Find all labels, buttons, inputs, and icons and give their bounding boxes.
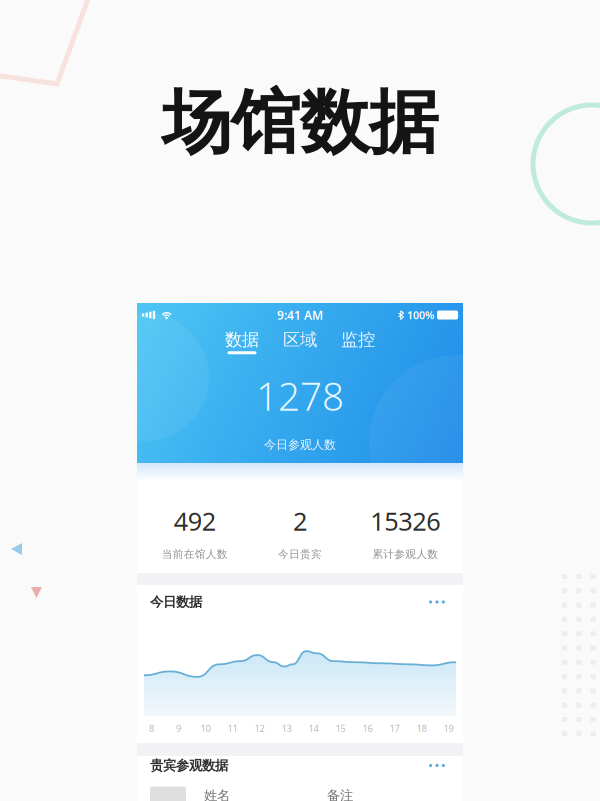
staticText: 贵宾参观数据: [150, 757, 228, 774]
staticText: 12: [254, 722, 264, 734]
staticText: 区域: [283, 329, 317, 350]
staticText: 累计参观人数: [372, 548, 438, 561]
staticText: 9: [176, 722, 181, 734]
staticText: 8: [149, 722, 154, 734]
staticText: 姓名: [204, 787, 230, 801]
staticText: 14: [308, 722, 318, 734]
staticText: 今日数据: [150, 594, 202, 610]
staticText: 9:41 AM: [277, 307, 323, 323]
staticText: 11: [227, 722, 237, 734]
staticText: 备注: [327, 787, 353, 801]
staticText: 492: [174, 504, 216, 538]
button[interactable]: More options: [424, 757, 450, 774]
staticText: 19: [443, 722, 453, 734]
button[interactable]: More options: [424, 593, 450, 611]
staticText: 今日参观人数: [264, 437, 336, 452]
staticText: 今日贵宾: [278, 548, 322, 561]
staticText: 13: [281, 722, 291, 734]
staticText: 2: [293, 504, 307, 538]
staticText: 当前在馆人数: [162, 548, 228, 561]
staticText: 场馆数据: [162, 80, 438, 165]
staticText: 1278: [256, 370, 344, 421]
staticText: 数据: [225, 329, 259, 350]
staticText: 18: [416, 722, 426, 734]
staticText: 100%: [407, 308, 434, 322]
staticText: 监控: [341, 329, 375, 350]
button[interactable]: 区域: [281, 329, 319, 354]
staticText: 15: [335, 722, 345, 734]
staticText: 15326: [370, 504, 440, 538]
button[interactable]: 数据: [223, 329, 261, 354]
staticText: 10: [200, 722, 210, 734]
staticText: 17: [389, 722, 399, 734]
staticText: 16: [362, 722, 372, 734]
button[interactable]: 监控: [339, 329, 377, 354]
